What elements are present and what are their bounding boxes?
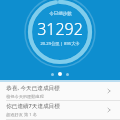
button[interactable]: 你已連續7天達成目標 xyxy=(0,101,120,119)
staticText: 你已連續7天達成目標 xyxy=(6,102,60,110)
other: Open details xyxy=(104,86,114,96)
other: Open details xyxy=(104,105,114,115)
staticText: 檢視今天的運動進程 xyxy=(6,94,44,99)
staticText: 31292 xyxy=(37,18,83,40)
staticText: 超過好友 第 1 名 xyxy=(6,112,37,118)
staticText: 恭喜, 今天已達成目標 xyxy=(6,84,60,92)
button[interactable]: 恭喜, 今天已達成目標 xyxy=(0,82,120,100)
staticText: 20.29公里 | 895大卡 xyxy=(40,41,80,47)
button[interactable]: 今日總步數 xyxy=(37,11,83,47)
staticText: 今日總步數 xyxy=(49,11,72,17)
